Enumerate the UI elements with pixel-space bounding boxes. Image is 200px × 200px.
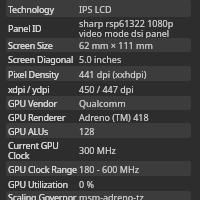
- button[interactable]: Pixel Density: [6, 66, 191, 81]
- staticText: GPU Utilization: [8, 178, 68, 190]
- button[interactable]: GPU Renderer: [6, 110, 191, 123]
- button[interactable]: GPU Clock Range: [6, 161, 191, 176]
- staticText: IPS LCD: [79, 3, 112, 15]
- staticText: Qualcomm: [79, 97, 126, 109]
- staticText: 5.0 inches: [79, 53, 122, 65]
- staticText: GPU Renderer: [8, 111, 66, 123]
- staticText: GPU Vendor: [8, 97, 57, 109]
- staticText: 300 MHz: [79, 144, 116, 156]
- staticText: Pixel Density: [8, 68, 59, 80]
- button[interactable]: GPU Utilization: [6, 176, 191, 191]
- staticText: Technology: [8, 3, 54, 15]
- staticText: 128: [79, 125, 95, 137]
- button[interactable]: xdpi / ydpi: [6, 81, 191, 96]
- staticText: GPU ALUs: [8, 125, 49, 137]
- staticText: 62 mm × 111 mm: [79, 39, 153, 51]
- staticText: Adreno (TM) 418: [79, 111, 149, 123]
- staticText: 180 - 600 MHz: [79, 163, 139, 175]
- staticText: Current GPU Clock: [8, 139, 59, 161]
- staticText: msm-adreno-tz: [79, 191, 144, 200]
- staticText: Scaling Governor: [8, 191, 77, 200]
- staticText: sharp rsp61322 1080p video mode dsi pane…: [79, 17, 174, 38]
- staticText: GPU Clock Range: [8, 163, 77, 175]
- staticText: 441 dpi (xxhdpi): [79, 68, 147, 80]
- staticText: 0 %: [79, 178, 94, 190]
- staticText: xdpi / ydpi: [8, 83, 50, 95]
- staticText: 450 / 447 dpi: [79, 83, 134, 95]
- button[interactable]: GPU ALUs: [6, 123, 191, 138]
- staticText: Screen Diagonal: [8, 53, 73, 65]
- button[interactable]: Technology: [6, 0, 191, 17]
- button[interactable]: Screen Size: [6, 38, 191, 52]
- button[interactable]: Panel ID: [6, 17, 191, 38]
- staticText: Panel ID: [8, 22, 42, 34]
- button[interactable]: Current GPU Clock: [6, 138, 191, 161]
- button[interactable]: Scaling Governor: [6, 191, 191, 200]
- button[interactable]: Screen Diagonal: [6, 52, 191, 66]
- staticText: Screen Size: [8, 39, 53, 51]
- button[interactable]: GPU Vendor: [6, 96, 191, 110]
